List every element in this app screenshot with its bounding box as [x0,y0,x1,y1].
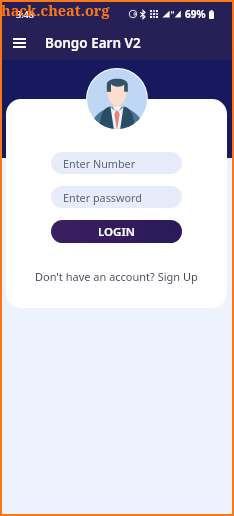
staticText: Enter Number [63,156,136,171]
button[interactable]: LOGIN [51,220,182,243]
staticText: LOGIN [98,224,135,240]
staticText: 69% [185,7,206,21]
button[interactable]: Enter password [51,186,182,208]
button[interactable]: Enter Number [51,152,182,174]
staticText: Bongo Earn V2 [45,34,141,52]
button[interactable]: Open navigation menu [6,30,32,56]
staticText: Enter password [63,190,142,205]
button[interactable]: Don't have an account? Sign Up [31,267,202,286]
staticText: hack.cheat.org [1,0,110,20]
staticText: 3:48 [16,8,34,20]
staticText: Don't have an account? Sign Up [35,269,198,284]
